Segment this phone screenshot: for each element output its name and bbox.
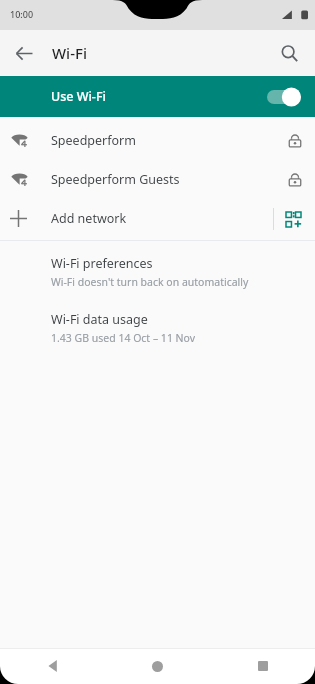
button[interactable]: Speedperform Guests: [0, 160, 315, 199]
staticText: Use Wi-Fi: [51, 88, 106, 105]
button[interactable]: Use Wi-Fi: [0, 76, 315, 117]
button[interactable]: Home: [105, 648, 210, 684]
button[interactable]: Back: [4, 33, 44, 73]
staticText: 10:00: [10, 8, 34, 20]
button[interactable]: Search: [269, 33, 309, 73]
staticText: Wi-Fi data usage: [51, 311, 148, 328]
button[interactable]: Scan QR code: [281, 207, 305, 231]
staticText: Wi-Fi: [52, 43, 87, 63]
staticText: Wi-Fi preferences: [51, 255, 153, 272]
button[interactable]: Add network: [0, 199, 315, 238]
button[interactable]: Speedperform: [0, 121, 315, 160]
button[interactable]: Back: [0, 648, 105, 684]
staticText: 1.43 GB used 14 Oct – 11 Nov: [51, 331, 196, 345]
staticText: Wi-Fi doesn't turn back on automatically: [51, 275, 249, 289]
button[interactable]: Recent apps: [210, 648, 315, 684]
staticText: Add network: [51, 210, 127, 227]
staticText: Speedperform Guests: [51, 171, 180, 188]
button[interactable]: Wi-Fi preferences: [0, 251, 315, 293]
button[interactable]: Wi-Fi data usage: [0, 307, 315, 349]
staticText: Speedperform: [51, 132, 136, 149]
